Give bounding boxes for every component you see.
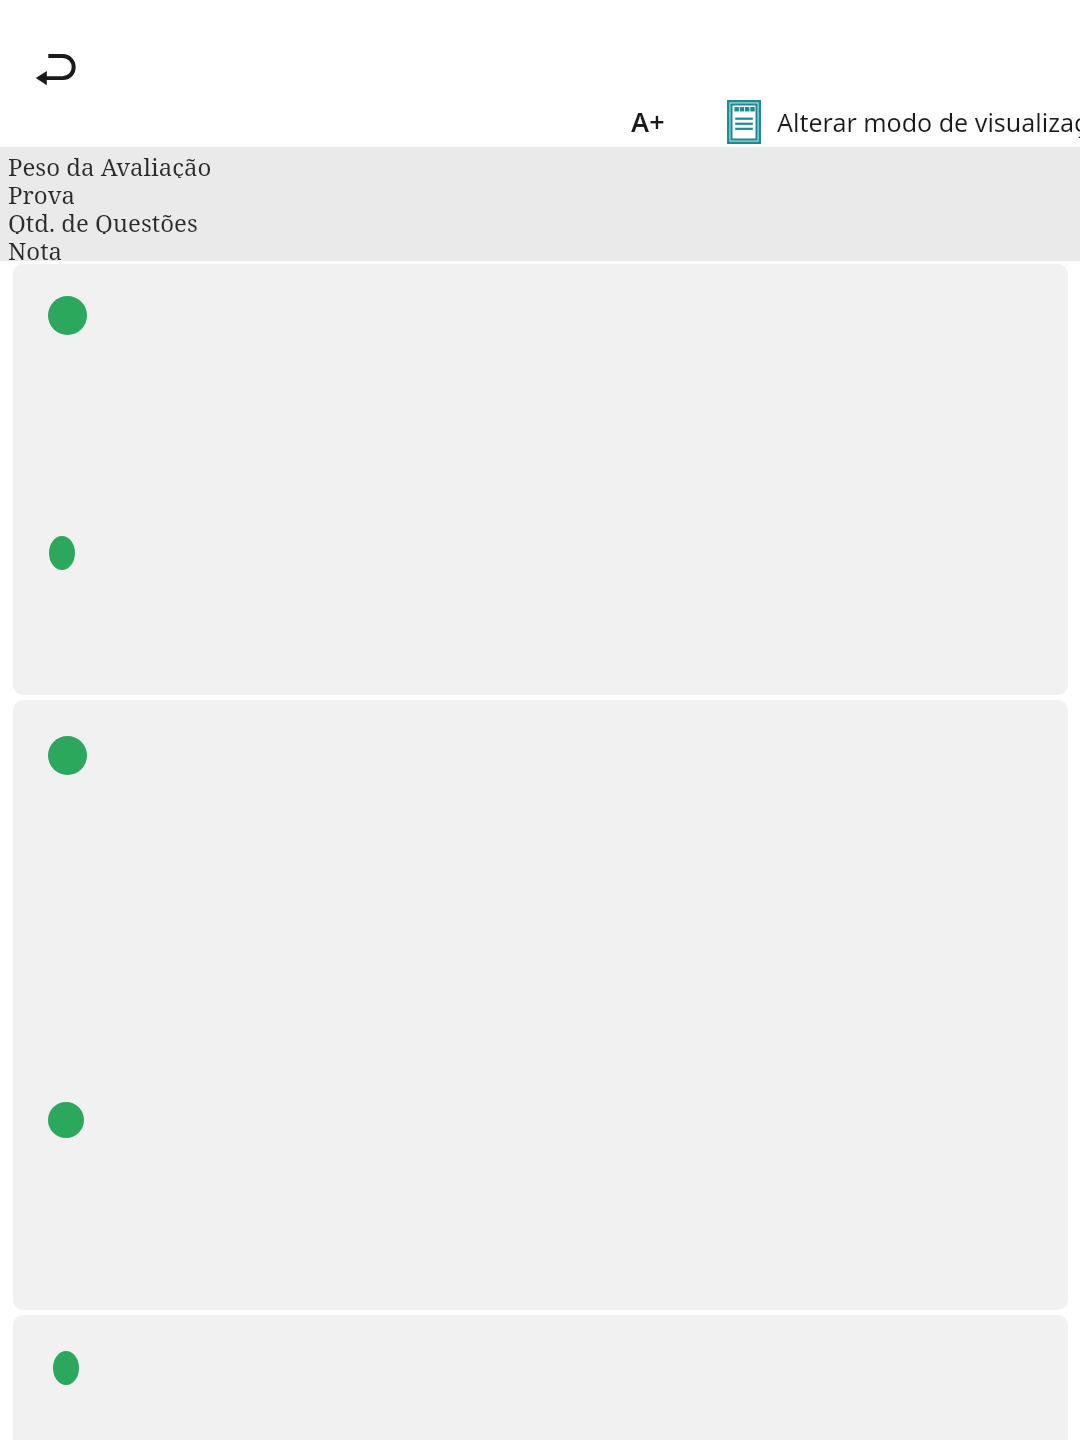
staticText: Peso da Avaliação	[8, 150, 212, 178]
button[interactable]	[13, 1315, 1068, 1440]
button[interactable]	[13, 700, 1068, 1310]
staticText: Alterar modo de visualização	[777, 105, 1080, 139]
staticText: Qtd. de Questões	[8, 206, 198, 234]
button[interactable]: A+	[598, 95, 697, 148]
button[interactable]: Voltar	[20, 38, 90, 100]
staticText: A+	[631, 103, 665, 140]
staticText: Prova	[8, 178, 76, 206]
staticText: Nota	[8, 234, 63, 261]
button[interactable]	[13, 264, 1068, 695]
button[interactable]: Alterar modo de visualização	[706, 95, 1080, 148]
